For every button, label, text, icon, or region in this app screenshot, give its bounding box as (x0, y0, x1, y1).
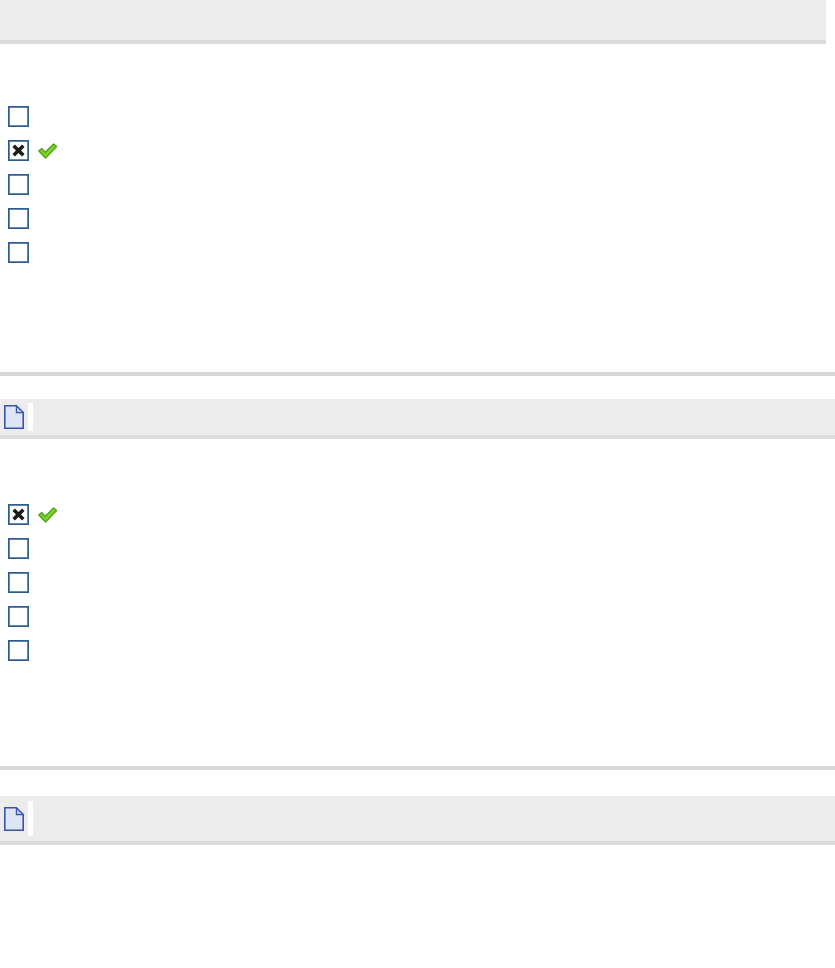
button[interactable]: Unchecked option (8, 606, 29, 627)
button[interactable]: Page (0, 796, 835, 841)
button[interactable]: Unchecked option (8, 572, 29, 593)
button[interactable]: Unchecked option (8, 106, 29, 127)
button[interactable]: Unchecked option (8, 242, 29, 263)
button[interactable]: Unchecked option (8, 640, 29, 661)
other: Correct (38, 507, 57, 523)
other: Page (4, 405, 24, 429)
button[interactable]: Checked option (8, 140, 29, 161)
button[interactable]: Unchecked option (8, 208, 29, 229)
button[interactable]: Unchecked option (8, 174, 29, 195)
button[interactable]: Page (0, 399, 835, 435)
other: Correct (38, 143, 57, 159)
other: Page (4, 807, 24, 831)
button[interactable]: Checked option (8, 504, 29, 525)
button[interactable]: Unchecked option (8, 538, 29, 559)
